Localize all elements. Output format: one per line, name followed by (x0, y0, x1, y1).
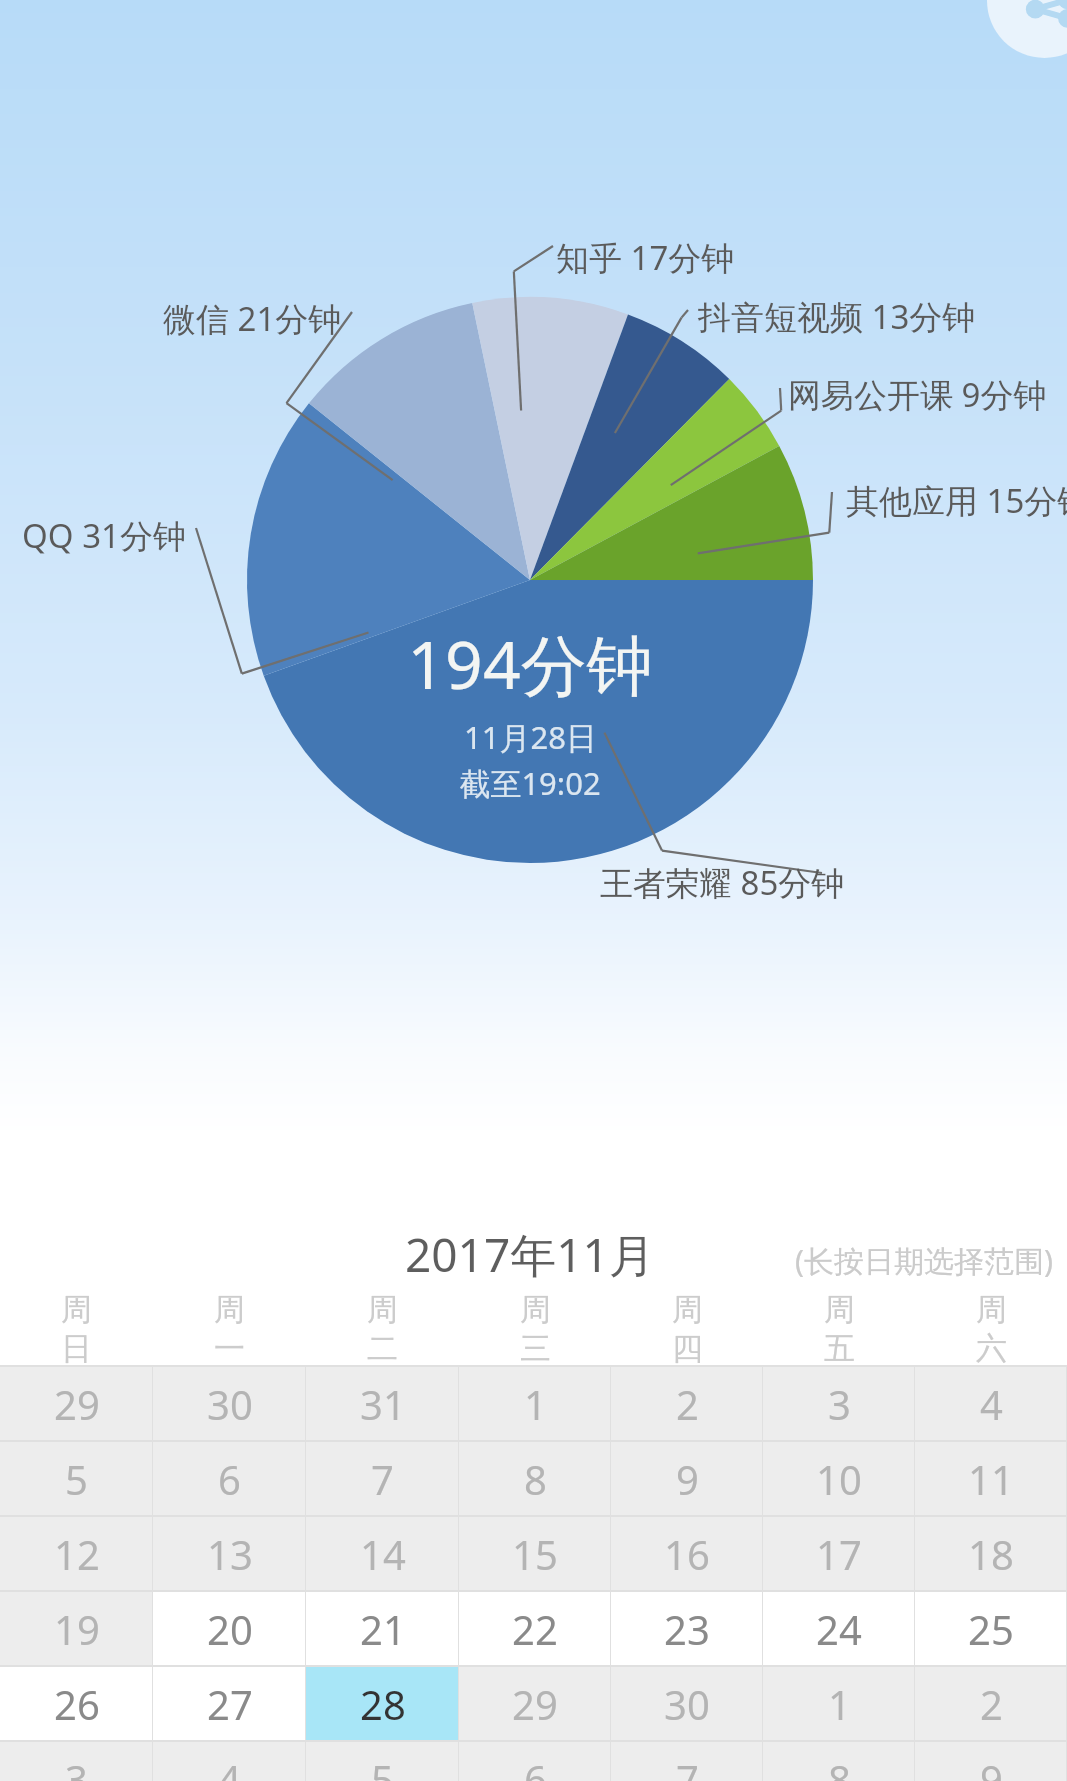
button[interactable]: 5 (0, 1441, 153, 1516)
button[interactable]: 16 (611, 1516, 763, 1591)
staticText: 周 (214, 1290, 245, 1329)
staticText: 28 (360, 1677, 406, 1731)
staticText: 24 (816, 1602, 862, 1656)
staticText: 12 (54, 1527, 100, 1581)
staticText: 8 (828, 1752, 851, 1781)
staticText: 4 (980, 1377, 1003, 1431)
staticText: 5 (65, 1452, 88, 1506)
staticText: 26 (54, 1677, 100, 1731)
staticText: 23 (664, 1602, 710, 1656)
staticText: 2 (676, 1377, 699, 1431)
button[interactable]: 6 (459, 1741, 611, 1781)
staticText: 三 (520, 1329, 551, 1366)
staticText: 周 (976, 1290, 1007, 1329)
button[interactable]: 30 (153, 1366, 306, 1441)
button[interactable]: 17 (763, 1516, 915, 1591)
button[interactable]: 19 (0, 1591, 153, 1666)
staticText: 27 (207, 1677, 253, 1731)
staticText: 周 (367, 1290, 398, 1329)
staticText: 二 (367, 1329, 398, 1366)
button[interactable]: 8 (459, 1441, 611, 1516)
button[interactable]: 8 (763, 1741, 915, 1781)
staticText: 6 (218, 1452, 241, 1506)
staticText: 7 (371, 1452, 394, 1506)
staticText: 11月28日 (464, 716, 597, 758)
button[interactable]: 29 (0, 1366, 153, 1441)
staticText: 18 (968, 1527, 1014, 1581)
staticText: 抖音短视频 13分钟 (698, 294, 976, 339)
staticText: 29 (54, 1377, 100, 1431)
staticText: 四 (672, 1329, 703, 1366)
button[interactable]: 18 (915, 1516, 1067, 1591)
staticText: 截至19:02 (459, 762, 601, 804)
button[interactable]: 2 (611, 1366, 763, 1441)
staticText: 3 (828, 1377, 851, 1431)
button[interactable]: 15 (459, 1516, 611, 1591)
staticText: 31 (360, 1377, 406, 1431)
button[interactable]: 4 (153, 1741, 306, 1781)
button[interactable]: 30 (611, 1666, 763, 1741)
staticText: 16 (664, 1527, 710, 1581)
staticText: 10 (816, 1452, 862, 1506)
staticText: 王者荣耀 85分钟 (600, 860, 845, 905)
staticText: 194分钟 (407, 618, 653, 708)
button[interactable]: 24 (763, 1591, 915, 1666)
staticText: 2 (980, 1677, 1003, 1731)
button[interactable]: 20 (153, 1591, 306, 1666)
button[interactable]: 23 (611, 1591, 763, 1666)
staticText: 14 (360, 1527, 406, 1581)
button[interactable]: 6 (153, 1441, 306, 1516)
staticText: 周 (520, 1290, 551, 1329)
button[interactable]: 7 (306, 1441, 459, 1516)
button[interactable]: 9 (915, 1741, 1067, 1781)
staticText: QQ 31分钟 (22, 513, 186, 558)
button[interactable]: 28 (306, 1666, 459, 1741)
button[interactable]: 1 (763, 1666, 915, 1741)
staticText: 4 (218, 1752, 241, 1781)
button[interactable]: 31 (306, 1366, 459, 1441)
staticText: 周 (61, 1290, 92, 1329)
staticText: 25 (968, 1602, 1014, 1656)
button[interactable]: 29 (459, 1666, 611, 1741)
staticText: 9 (980, 1752, 1003, 1781)
button[interactable]: 7 (611, 1741, 763, 1781)
staticText: (长按日期选择范围) (795, 1240, 1053, 1281)
button[interactable]: 26 (0, 1666, 153, 1741)
button[interactable]: 10 (763, 1441, 915, 1516)
button[interactable]: 3 (763, 1366, 915, 1441)
button[interactable]: 25 (915, 1591, 1067, 1666)
button[interactable]: Share (987, 0, 1067, 58)
button[interactable]: 4 (915, 1366, 1067, 1441)
staticText: 7 (676, 1752, 699, 1781)
staticText: 6 (524, 1752, 547, 1781)
staticText: 29 (512, 1677, 558, 1731)
staticText: 一 (214, 1329, 245, 1366)
button[interactable]: 22 (459, 1591, 611, 1666)
button[interactable]: 14 (306, 1516, 459, 1591)
staticText: 8 (524, 1452, 547, 1506)
staticText: 1 (524, 1377, 547, 1431)
button[interactable]: 2 (915, 1666, 1067, 1741)
staticText: 六 (976, 1329, 1007, 1366)
button[interactable]: 3 (0, 1741, 153, 1781)
button[interactable]: 27 (153, 1666, 306, 1741)
staticText: 网易公开课 9分钟 (788, 372, 1047, 417)
button[interactable]: 13 (153, 1516, 306, 1591)
staticText: 17 (816, 1527, 862, 1581)
button[interactable]: 11 (915, 1441, 1067, 1516)
staticText: 5 (371, 1752, 394, 1781)
staticText: 22 (512, 1602, 558, 1656)
staticText: 13 (207, 1527, 253, 1581)
staticText: 20 (207, 1602, 253, 1656)
staticText: 2017年11月 (405, 1223, 655, 1286)
staticText: 19 (54, 1602, 100, 1656)
staticText: 11 (968, 1452, 1014, 1506)
staticText: 15 (512, 1527, 558, 1581)
button[interactable]: 5 (306, 1741, 459, 1781)
button[interactable]: 12 (0, 1516, 153, 1591)
button[interactable]: 1 (459, 1366, 611, 1441)
button[interactable]: 9 (611, 1441, 763, 1516)
staticText: 3 (65, 1752, 88, 1781)
button[interactable]: 21 (306, 1591, 459, 1666)
staticText: 周 (824, 1290, 855, 1329)
